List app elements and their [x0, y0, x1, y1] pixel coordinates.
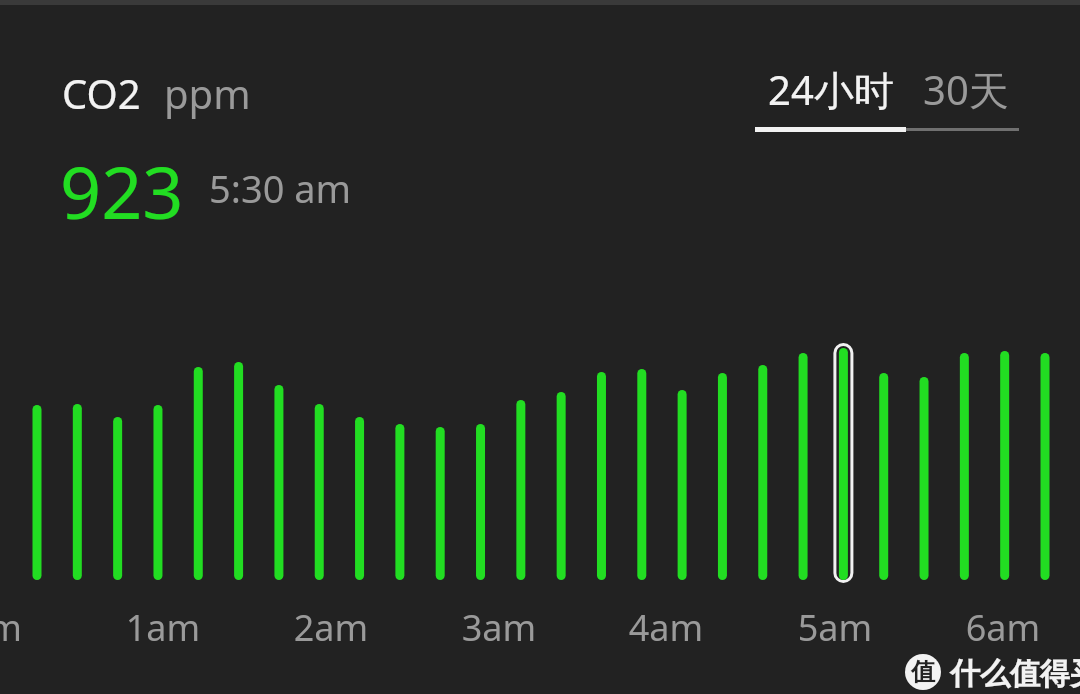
button[interactable]: 30天 [906, 62, 1019, 136]
staticText: 什么值得买 [950, 655, 1080, 693]
staticText: 5:30 am [209, 162, 352, 214]
staticText: 值 [911, 657, 935, 687]
staticText: 24小时 [768, 62, 894, 117]
staticText: am [0, 603, 55, 649]
staticText: 4am [606, 603, 726, 649]
staticText: 2am [271, 603, 391, 649]
button[interactable]: 24小时 [755, 62, 906, 136]
staticText: 1am [103, 603, 223, 649]
staticText: 923 [60, 142, 184, 240]
staticText: CO2 [62, 66, 141, 120]
staticText: 3am [439, 603, 559, 649]
staticText: 6am [943, 603, 1063, 649]
staticText: 5am [775, 603, 895, 649]
staticText: 30天 [923, 62, 1009, 117]
staticText: ppm [164, 66, 251, 120]
